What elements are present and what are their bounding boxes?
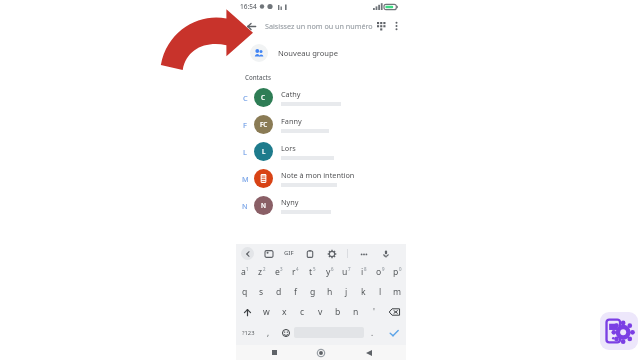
staticText: h — [327, 286, 333, 298]
staticText: , — [267, 327, 270, 338]
button[interactable]: More — [357, 247, 370, 260]
staticText: 1 — [246, 266, 249, 272]
button[interactable]: F — [236, 111, 406, 138]
button[interactable]: g — [304, 282, 321, 302]
button[interactable]: More options — [393, 18, 400, 34]
button[interactable]: l — [372, 282, 389, 302]
staticText: n — [353, 306, 359, 318]
staticText: w — [263, 306, 270, 318]
staticText: ?123 — [242, 329, 255, 337]
staticText: GIF — [284, 249, 294, 257]
staticText: N — [261, 201, 266, 210]
staticText: Fanny — [281, 116, 302, 126]
staticText: Nouveau groupe — [278, 48, 339, 58]
staticText: 8 — [364, 266, 367, 272]
button[interactable]: p — [389, 262, 406, 282]
staticText: L — [262, 147, 266, 156]
staticText: Cathy — [281, 89, 301, 99]
button[interactable]: f — [287, 282, 304, 302]
button[interactable]: s — [253, 282, 270, 302]
button[interactable]: Stickers — [262, 247, 275, 260]
staticText: k — [361, 286, 366, 298]
staticText: Note à mon intention — [281, 170, 355, 180]
staticText: q — [242, 286, 248, 298]
staticText: Contacts — [245, 73, 271, 81]
staticText: v — [318, 306, 323, 318]
button[interactable]: , — [260, 322, 277, 343]
button[interactable]: Recent apps — [264, 345, 284, 360]
staticText: 5 — [313, 266, 316, 272]
button[interactable]: q — [236, 282, 253, 302]
staticText: . — [371, 327, 374, 338]
button[interactable]: C — [236, 84, 406, 111]
button[interactable]: n — [347, 302, 365, 322]
button[interactable]: i — [355, 262, 372, 282]
button[interactable]: x — [275, 302, 293, 322]
button[interactable]: Nouveau groupe — [236, 39, 406, 67]
button[interactable]: Home — [311, 345, 331, 360]
staticText: j — [345, 286, 348, 298]
staticText: o — [376, 266, 382, 278]
button[interactable]: ?123 — [236, 322, 260, 343]
staticText: ' — [373, 306, 375, 318]
staticText: u — [342, 266, 348, 278]
button[interactable]: u — [338, 262, 355, 282]
button[interactable]: o — [372, 262, 389, 282]
button[interactable]: Enter — [381, 322, 406, 343]
staticText: r — [292, 266, 296, 278]
button[interactable]: y — [321, 262, 338, 282]
staticText: t — [309, 266, 313, 278]
staticText: FC — [260, 120, 268, 129]
button[interactable]: App settings badge — [600, 312, 638, 350]
button[interactable]: Emoji — [277, 322, 294, 343]
button[interactable]: d — [270, 282, 287, 302]
button[interactable]: m — [389, 282, 406, 302]
button[interactable]: Back — [359, 345, 379, 360]
staticText: i — [361, 266, 364, 278]
button[interactable]: j — [338, 282, 355, 302]
button[interactable]: a — [236, 262, 253, 282]
staticText: d — [276, 286, 282, 298]
button[interactable]: . — [364, 322, 381, 343]
button[interactable]: r — [287, 262, 304, 282]
button[interactable]: L — [236, 138, 406, 165]
button[interactable]: M — [236, 165, 406, 192]
staticText: e — [275, 266, 280, 278]
button[interactable]: e — [270, 262, 287, 282]
button[interactable]: Backspace — [383, 302, 406, 322]
button[interactable]: z — [253, 262, 270, 282]
button[interactable]: h — [321, 282, 338, 302]
staticText: 6 — [331, 266, 334, 272]
staticText: g — [310, 286, 316, 298]
button[interactable]: c — [293, 302, 311, 322]
staticText: 4 — [296, 266, 299, 272]
staticText: C — [261, 93, 266, 102]
button[interactable]: b — [329, 302, 347, 322]
button[interactable]: Back — [242, 17, 260, 35]
button[interactable]: Clipboard — [303, 247, 316, 260]
staticText: 2 — [263, 266, 266, 272]
button[interactable]: v — [311, 302, 329, 322]
button[interactable]: k — [355, 282, 372, 302]
button[interactable]: Dial pad — [373, 18, 389, 34]
button[interactable]: Settings — [325, 247, 338, 260]
button[interactable]: Expand toolbar — [241, 247, 254, 260]
button[interactable]: N — [236, 192, 406, 219]
button[interactable]: w — [258, 302, 275, 322]
staticText: Nyny — [281, 197, 299, 207]
staticText: c — [300, 306, 305, 318]
button[interactable]: Voice input — [379, 247, 392, 260]
staticText: p — [393, 266, 399, 278]
staticText: 9 — [382, 266, 385, 272]
button[interactable]: ' — [365, 302, 383, 322]
staticText: s — [259, 286, 264, 298]
staticText: C — [243, 93, 248, 103]
staticText: 16:54 — [240, 2, 257, 11]
staticText: f — [294, 286, 297, 298]
staticText: x — [282, 306, 287, 318]
staticText: L — [243, 147, 247, 157]
button[interactable]: Shift — [236, 302, 258, 322]
button[interactable]: t — [304, 262, 321, 282]
staticText: z — [258, 266, 263, 278]
